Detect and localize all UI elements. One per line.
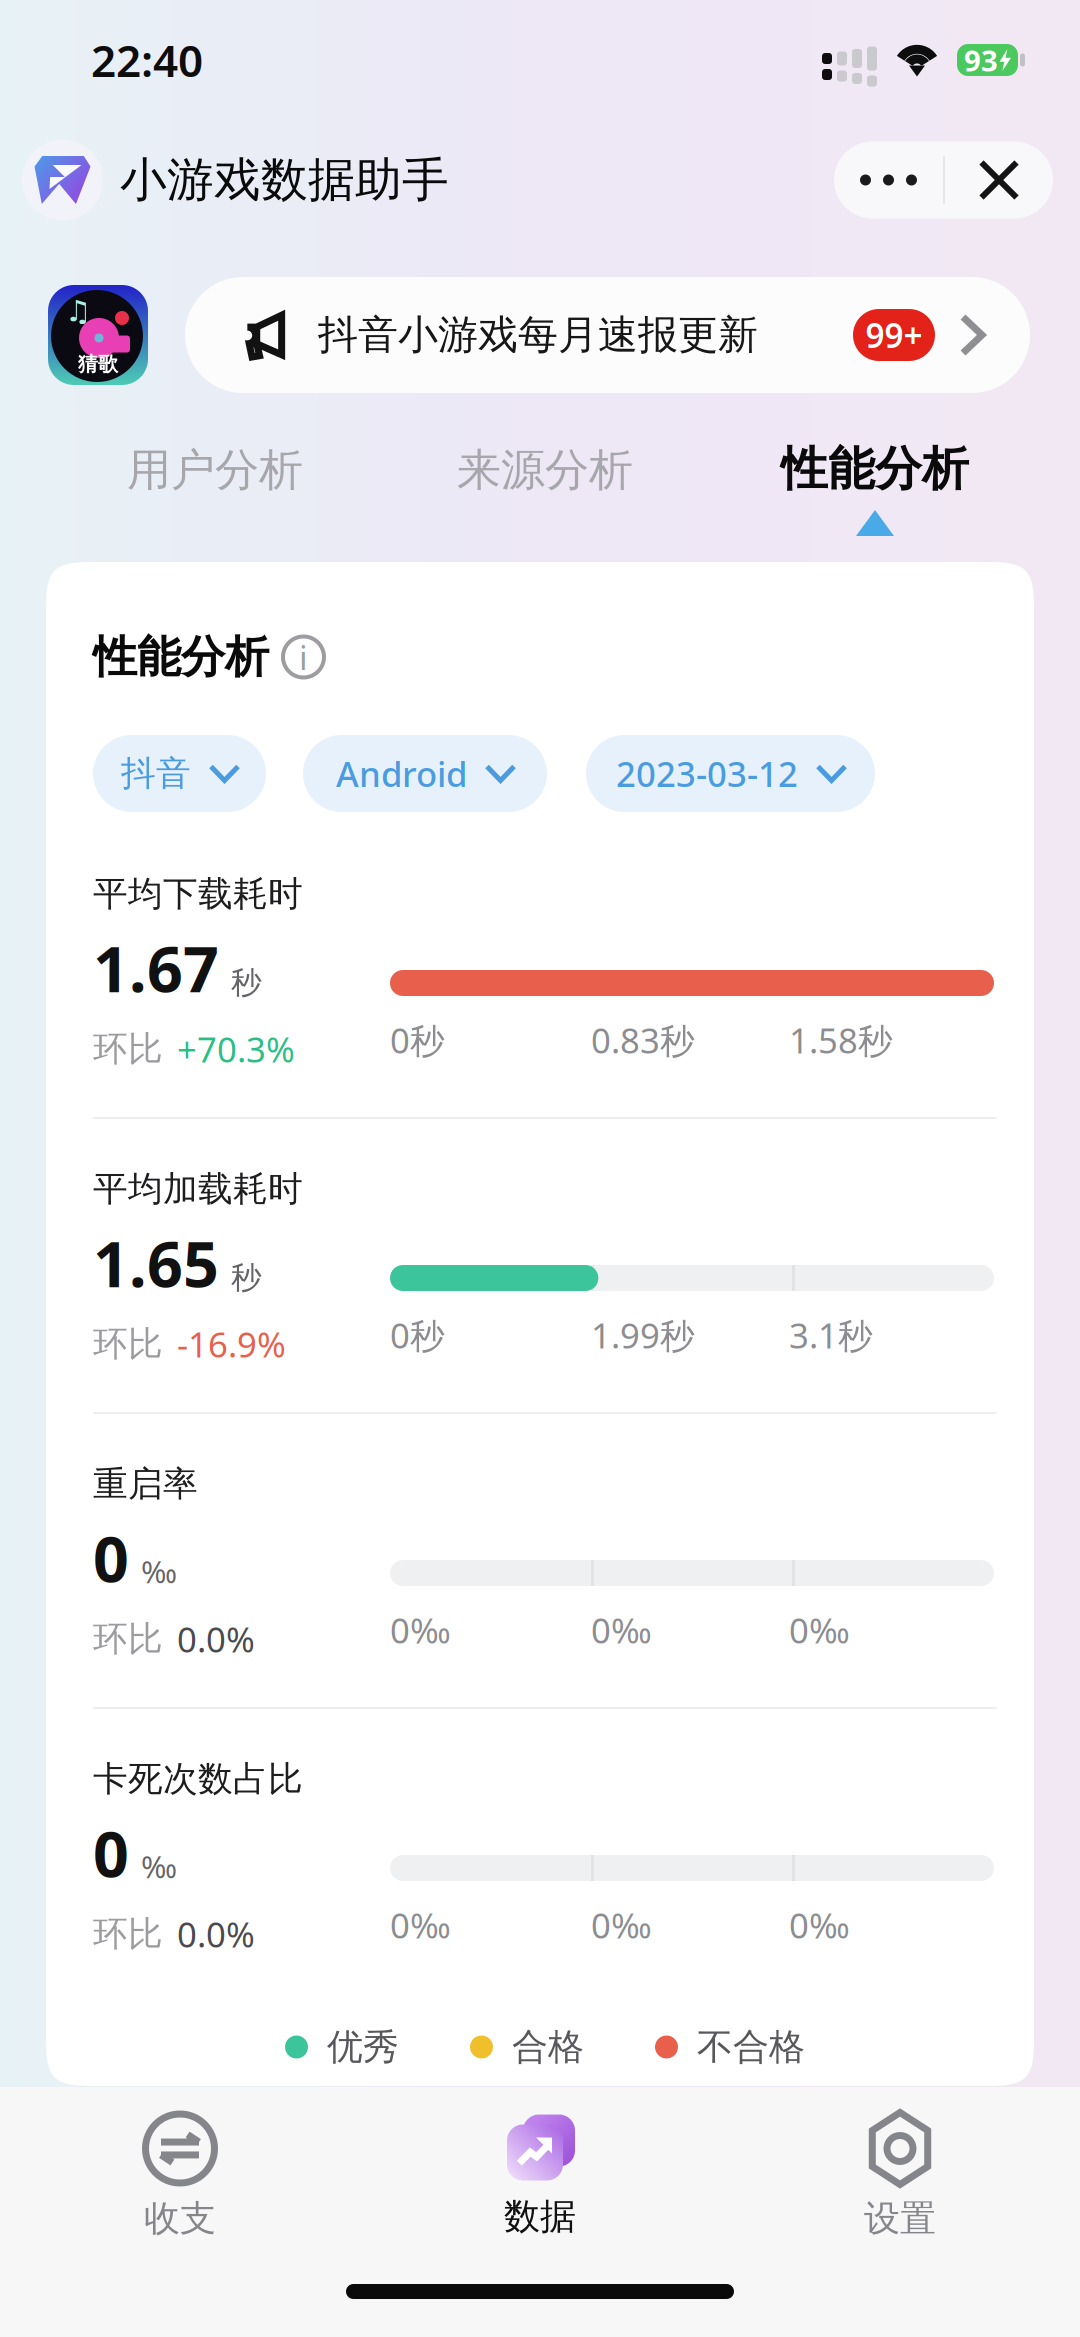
staticText: 93	[964, 40, 998, 79]
staticText: 猜歌	[78, 352, 118, 376]
staticText: 1.99秒	[591, 1312, 695, 1358]
staticText: 0.0%	[177, 1911, 255, 1957]
staticText: +70.3%	[177, 1026, 295, 1072]
staticText: -16.9%	[177, 1321, 286, 1367]
staticText: 0‰	[390, 1607, 451, 1653]
button[interactable]: Close	[945, 141, 1053, 218]
staticText: 1.58秒	[789, 1017, 893, 1063]
staticText: 不合格	[697, 2025, 805, 2069]
staticText: 性能分析	[93, 630, 269, 684]
staticText: 0‰	[591, 1902, 652, 1948]
button[interactable]: Android	[303, 735, 547, 812]
staticText: 0	[93, 1811, 129, 1895]
staticText: 环比	[93, 1028, 163, 1070]
staticText: 1.65	[93, 1221, 219, 1305]
staticText: 环比	[93, 1618, 163, 1660]
staticText: 平均加载耗时	[93, 1168, 303, 1210]
staticText: 用户分析	[127, 443, 303, 497]
staticText: 0‰	[390, 1902, 451, 1948]
staticText: 0	[93, 1516, 129, 1600]
staticText: 22:40	[91, 31, 203, 89]
staticText: 重启率	[93, 1463, 198, 1505]
button[interactable]: 用户分析	[50, 428, 380, 560]
staticText: ♫	[65, 294, 91, 328]
staticText: 0秒	[390, 1017, 445, 1063]
staticText: Android	[336, 750, 467, 796]
staticText: 0‰	[591, 1607, 652, 1653]
staticText: 2023-03-12	[616, 750, 798, 796]
staticText: 环比	[93, 1323, 163, 1365]
staticText: 0秒	[390, 1312, 445, 1358]
staticText: 性能分析	[781, 440, 969, 498]
staticText: 数据	[504, 2194, 576, 2239]
staticText: 环比	[93, 1913, 163, 1955]
staticText: 0‰	[789, 1607, 850, 1653]
button[interactable]: More	[834, 141, 943, 218]
staticText: 0.83秒	[591, 1017, 695, 1063]
staticText: 小游戏数据助手	[120, 151, 449, 209]
staticText: 来源分析	[457, 443, 633, 497]
button[interactable]: 设置	[720, 2100, 1080, 2250]
staticText: 抖音小游戏每月速报更新	[318, 310, 758, 359]
button[interactable]: 性能分析	[710, 428, 1040, 560]
staticText: ‰	[141, 1846, 177, 1887]
staticText: 秒	[231, 964, 262, 1002]
staticText: 平均下载耗时	[93, 873, 303, 915]
staticText: 设置	[864, 2196, 936, 2241]
staticText: 合格	[512, 2025, 584, 2069]
staticText: 1.67	[93, 926, 219, 1010]
button[interactable]: 抖音小游戏每月速报更新	[185, 277, 1030, 393]
button[interactable]: 来源分析	[380, 428, 710, 560]
button[interactable]: 2023-03-12	[586, 735, 875, 812]
button[interactable]: 数据	[360, 2100, 720, 2250]
staticText: ‰	[141, 1551, 177, 1592]
staticText: 收支	[144, 2196, 216, 2241]
button[interactable]: 收支	[0, 2100, 360, 2250]
staticText: 秒	[231, 1259, 262, 1297]
staticText: 99+	[865, 313, 922, 357]
staticText: 优秀	[327, 2025, 399, 2069]
staticText: i	[299, 635, 308, 679]
button[interactable]: 抖音	[93, 735, 266, 812]
staticText: 0.0%	[177, 1616, 255, 1662]
staticText: 卡死次数占比	[93, 1758, 303, 1800]
staticText: 3.1秒	[789, 1312, 873, 1358]
staticText: 抖音	[121, 752, 191, 795]
staticText: 0‰	[789, 1902, 850, 1948]
